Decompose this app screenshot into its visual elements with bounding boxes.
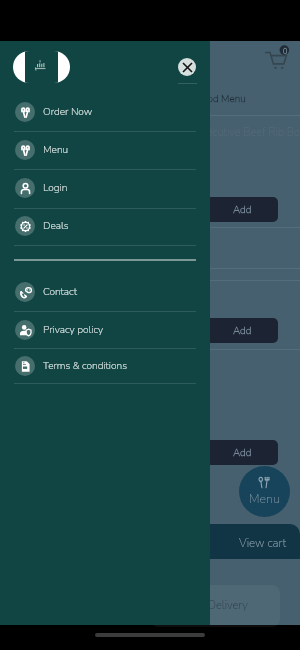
staticText: Delivery: [208, 598, 248, 613]
staticText: Order Now: [43, 105, 93, 119]
staticText: Add: [233, 203, 252, 217]
staticText: Executive Beef Rib Bowl: [195, 125, 300, 140]
staticText: Menu: [43, 143, 69, 157]
button[interactable]: Terms & conditions: [0, 347, 210, 384]
button[interactable]: Add: [206, 318, 278, 343]
button[interactable]: Menu: [239, 466, 290, 517]
staticText: 0: [283, 47, 288, 57]
button[interactable]: Shopping cart: [263, 47, 289, 73]
button[interactable]: Restaurant logo: [13, 51, 70, 83]
button[interactable]: Deals: [0, 207, 210, 245]
staticText: Terms & conditions: [43, 359, 127, 373]
button[interactable]: Menu: [0, 131, 210, 169]
button[interactable]: Contact: [0, 273, 210, 311]
button[interactable]: View cart: [10, 524, 300, 559]
button[interactable]: Login: [0, 169, 210, 207]
staticText: Add: [233, 446, 252, 460]
button[interactable]: Close menu: [178, 58, 196, 76]
staticText: Contact: [43, 285, 77, 299]
staticText: Menu: [249, 490, 280, 507]
staticText: View cart: [239, 535, 287, 551]
staticText: Food Menu: [197, 92, 246, 106]
staticText: Add: [233, 324, 252, 338]
button[interactable]: Add: [206, 440, 278, 465]
staticText: Deals: [43, 219, 69, 233]
button[interactable]: Order Now: [0, 93, 210, 131]
button[interactable]: Privacy policy: [0, 311, 210, 348]
staticText: Privacy policy: [43, 323, 104, 337]
button[interactable]: Add: [206, 197, 278, 222]
staticText: Login: [43, 181, 68, 195]
